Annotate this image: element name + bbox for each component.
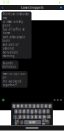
button[interactable]: j: [38, 109, 42, 114]
button[interactable]: v: [30, 115, 34, 119]
button[interactable]: g: [30, 109, 34, 114]
button[interactable]: ○: [20, 120, 23, 124]
button[interactable]: d: [22, 109, 26, 114]
staticText: return: [42, 119, 49, 126]
staticText: g: [31, 110, 33, 113]
button[interactable]: u: [36, 104, 40, 108]
staticText: e: [21, 104, 23, 108]
staticText: Want to try it out on: [2, 72, 25, 79]
staticText: ○: [21, 121, 23, 124]
button[interactable]: Details: [60, 6, 62, 8]
button[interactable]: ⌫: [46, 115, 51, 119]
staticText: b: [35, 115, 37, 119]
button[interactable]: a: [14, 109, 18, 114]
button[interactable]: o: [44, 104, 48, 108]
staticText: cup of coffee at home: [2, 28, 24, 35]
button[interactable]: w: [16, 104, 20, 108]
staticText: 123: [15, 119, 19, 126]
staticText: q: [13, 104, 15, 108]
button[interactable]: n: [38, 115, 42, 119]
button[interactable]: s: [18, 109, 22, 114]
button[interactable]: Camera: [54, 99, 56, 101]
staticText: o: [45, 104, 47, 108]
button[interactable]: k: [42, 109, 46, 114]
staticText: ⇧: [14, 115, 16, 118]
button[interactable]: b: [34, 115, 38, 119]
button[interactable]: z: [18, 115, 22, 119]
staticText: h: [35, 110, 37, 113]
button[interactable]: h: [34, 109, 38, 114]
button[interactable]: y: [32, 104, 36, 108]
staticText: ▮▮: [59, 1, 61, 4]
staticText: and a bit of patience: [2, 43, 18, 50]
staticText: space: [29, 120, 36, 124]
button[interactable]: Add attachment: [2, 99, 5, 101]
staticText: every single morning: [2, 51, 18, 58]
button[interactable]: t: [28, 104, 32, 108]
staticText: ⌫: [47, 115, 51, 118]
button[interactable]: Back: [2, 4, 3, 11]
staticText: d: [23, 110, 25, 113]
staticText: with a few simple tools: [2, 35, 25, 43]
button[interactable]: Audio: [57, 99, 59, 101]
button[interactable]: q: [12, 104, 16, 108]
button[interactable]: e: [20, 104, 24, 108]
staticText: ‹: [2, 4, 3, 11]
button[interactable]: x: [22, 115, 26, 119]
button[interactable]: f: [26, 109, 30, 114]
button[interactable]: return: [42, 120, 49, 124]
staticText: to make a really good: [2, 20, 22, 27]
staticText: There's an elaborate way: [2, 12, 29, 20]
staticText: w: [17, 104, 19, 108]
button[interactable]: p: [48, 104, 52, 108]
button[interactable]: l: [46, 109, 50, 114]
button[interactable]: ⇧: [13, 115, 18, 119]
staticText: 9:41: [3, 1, 10, 4]
staticText: n: [39, 115, 41, 119]
button[interactable]: 123: [14, 120, 19, 124]
button[interactable]: c: [26, 115, 30, 119]
button[interactable]: r: [24, 104, 28, 108]
button[interactable]: space: [24, 120, 41, 124]
staticText: the weekend together?: [2, 80, 21, 87]
button[interactable]: i: [40, 104, 44, 108]
staticText: m: [43, 115, 45, 119]
staticText: p: [49, 104, 51, 108]
button[interactable]: m: [42, 115, 46, 119]
staticText: u: [37, 104, 39, 108]
staticText: Sounds delicious: [2, 61, 15, 69]
staticText: Cases Snippets: [21, 5, 43, 9]
